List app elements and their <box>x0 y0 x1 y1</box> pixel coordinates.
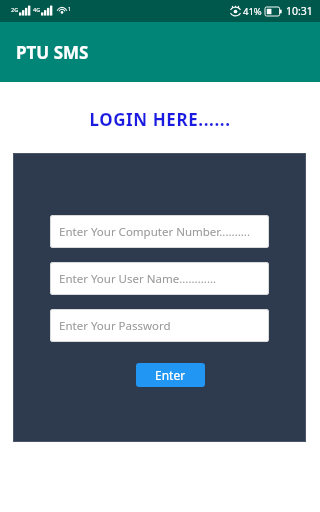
button[interactable]: Enter Your User Name............ <box>50 262 269 295</box>
staticText: 10:31 <box>286 4 313 18</box>
staticText: Enter Your Computer Number.......... <box>59 224 251 240</box>
button[interactable]: Enter <box>136 363 205 387</box>
button[interactable]: Enter Your Password <box>50 309 269 342</box>
staticText: 41% <box>243 5 262 18</box>
button[interactable]: LOGIN HERE...... <box>0 108 320 131</box>
staticText: 1 <box>68 5 72 12</box>
staticText: Enter Your User Name............ <box>59 271 217 287</box>
staticText: 4G <box>33 6 41 13</box>
staticText: Enter <box>155 367 186 383</box>
staticText: PTU SMS <box>16 41 89 64</box>
staticText: Enter Your Password <box>59 318 171 334</box>
button[interactable]: Enter Your Computer Number.......... <box>50 215 269 248</box>
staticText: 2G <box>11 6 19 13</box>
